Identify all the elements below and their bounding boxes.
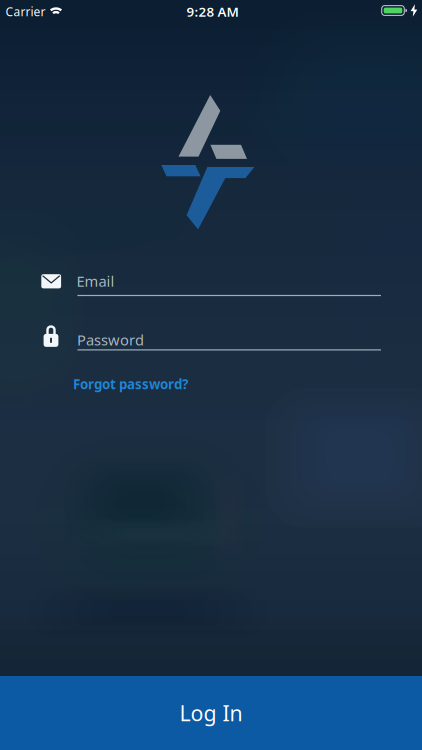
staticText: Email [76, 271, 114, 291]
button[interactable]: Email [36, 267, 381, 297]
staticText: Carrier [5, 3, 45, 19]
staticText: Forgot password? [73, 375, 188, 393]
staticText: Log In [179, 699, 242, 727]
button[interactable]: Password [36, 322, 381, 352]
button[interactable]: Forgot password? [73, 375, 188, 393]
button[interactable]: Log In [0, 676, 422, 750]
staticText: 9:28 AM [186, 3, 238, 20]
staticText: Password [77, 330, 144, 350]
